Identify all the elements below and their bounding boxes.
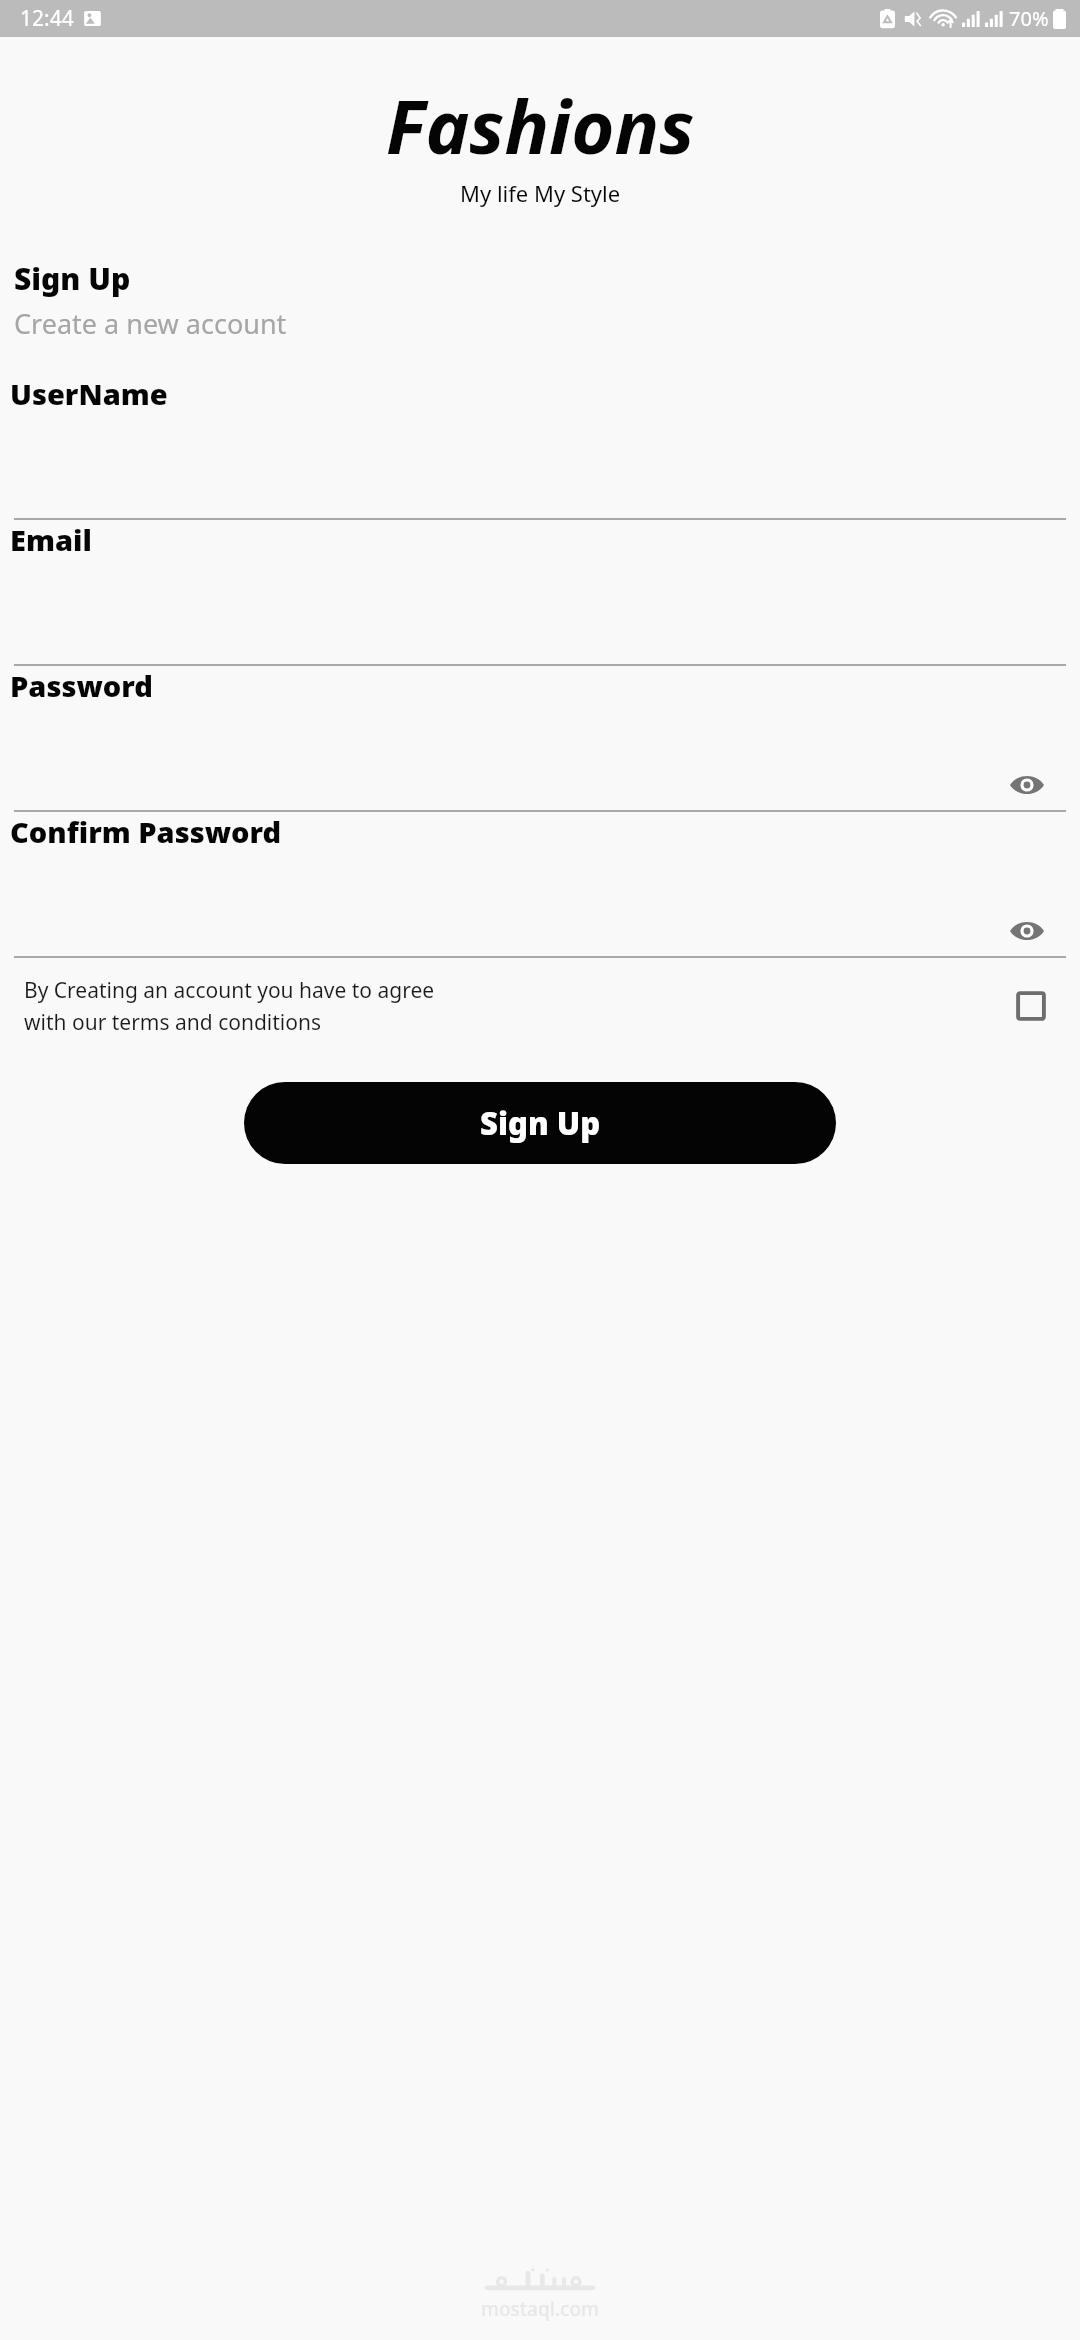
button[interactable]: Email bbox=[0, 520, 1080, 666]
staticText: UserName bbox=[10, 374, 168, 413]
staticText: 70% bbox=[1009, 5, 1049, 32]
button[interactable]: Sign Up bbox=[244, 1082, 836, 1164]
other: Agree to terms and conditions bbox=[1016, 991, 1046, 1021]
staticText: Password bbox=[10, 666, 153, 705]
button[interactable]: Show password bbox=[1010, 920, 1044, 942]
staticText: mostaql.com bbox=[481, 2296, 599, 2322]
button[interactable]: Confirm Password bbox=[0, 812, 1080, 958]
staticText: Sign Up bbox=[14, 258, 131, 299]
staticText: Fashions bbox=[386, 75, 695, 176]
staticText: 12:44 bbox=[20, 4, 74, 33]
button[interactable]: Password bbox=[0, 666, 1080, 812]
staticText: Email bbox=[10, 520, 92, 559]
staticText: Create a new account bbox=[14, 305, 287, 342]
button[interactable]: By Creating an account you have to agree… bbox=[0, 972, 1080, 1040]
staticText: My life My Style bbox=[460, 178, 621, 208]
staticText: Confirm Password bbox=[10, 812, 282, 851]
staticText: By Creating an account you have to agree… bbox=[24, 976, 1016, 1036]
button[interactable]: UserName bbox=[0, 374, 1080, 520]
button[interactable]: Show password bbox=[1010, 774, 1044, 796]
staticText: Sign Up bbox=[480, 1102, 601, 1144]
